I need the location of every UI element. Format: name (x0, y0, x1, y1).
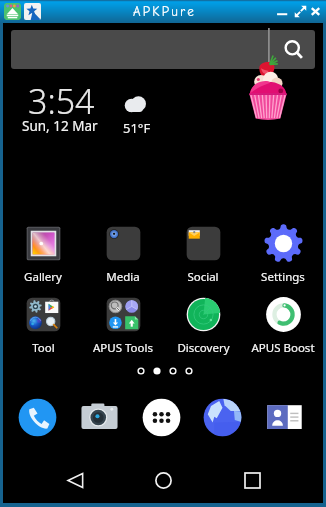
button[interactable]: Settings (243, 225, 323, 285)
button[interactable]: Minimize (274, 3, 291, 20)
button[interactable]: App icon (4, 3, 21, 20)
button[interactable]: Recents (234, 463, 270, 497)
button[interactable]: Discovery (163, 296, 243, 356)
button[interactable]: Contacts (264, 397, 305, 438)
staticText: 51°F (123, 119, 151, 137)
button[interactable]: Browser (202, 397, 243, 438)
button[interactable]: Phone (17, 397, 58, 438)
button[interactable]: Media (83, 225, 163, 285)
staticText: APUS Boost (251, 340, 315, 356)
staticText: Tool (32, 340, 55, 356)
button[interactable]: 3:54 (22, 78, 172, 158)
staticText: Sun, 12 Mar (22, 117, 98, 135)
button[interactable]: Gallery (3, 225, 83, 285)
button[interactable]: Apps (141, 397, 182, 438)
staticText: Gallery (24, 269, 62, 285)
staticText: Media (106, 269, 140, 285)
staticText: Social (187, 269, 219, 285)
button[interactable]: Search (11, 30, 315, 69)
button[interactable]: Home (145, 463, 181, 497)
button[interactable]: Social (163, 225, 243, 285)
staticText: Settings (261, 269, 305, 285)
button[interactable]: Tool (3, 296, 83, 356)
button[interactable]: APUS Tools (83, 296, 163, 356)
staticText: Discovery (177, 340, 230, 356)
button[interactable]: Back (57, 463, 93, 497)
button[interactable]: Camera (79, 397, 120, 438)
button[interactable]: Close (307, 3, 324, 20)
button[interactable]: Maximize (292, 3, 309, 20)
button[interactable]: APUS Boost (243, 296, 323, 356)
staticText: APUS Tools (93, 340, 153, 356)
staticText: 3:54 (28, 78, 95, 124)
button[interactable]: Favorites (24, 3, 41, 20)
staticText: APKPure (133, 4, 196, 19)
